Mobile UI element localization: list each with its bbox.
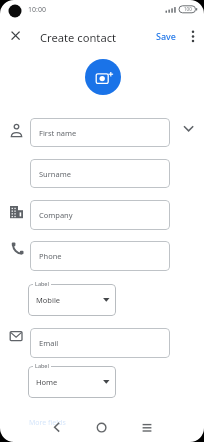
staticText: 100 <box>184 6 192 12</box>
button[interactable]: Home <box>28 366 116 398</box>
button[interactable] <box>180 121 197 138</box>
staticText: Create contact <box>40 30 117 45</box>
button[interactable]: Mobile <box>28 284 116 316</box>
button[interactable] <box>85 59 121 95</box>
button[interactable] <box>48 419 66 437</box>
button[interactable]: Company <box>30 200 170 230</box>
staticText: First name <box>39 128 77 138</box>
button[interactable]: Surname <box>30 159 170 188</box>
staticText: Company <box>39 210 73 220</box>
staticText: Phone <box>39 251 62 261</box>
button[interactable] <box>138 419 156 437</box>
button[interactable] <box>8 29 24 45</box>
staticText: Label <box>35 280 49 287</box>
button[interactable]: Email <box>30 328 170 358</box>
button[interactable]: Save <box>152 25 180 47</box>
staticText: 10:00 <box>28 5 46 15</box>
staticText: Home <box>36 377 58 387</box>
button[interactable] <box>186 29 200 45</box>
staticText: Surname <box>39 169 71 179</box>
button[interactable]: More fields <box>29 417 89 429</box>
staticText: Save <box>156 30 177 42</box>
staticText: More fields <box>29 418 66 428</box>
staticText: Email <box>39 338 59 348</box>
staticText: Label <box>35 362 49 369</box>
button[interactable] <box>93 419 111 437</box>
button[interactable]: Phone <box>30 241 170 271</box>
staticText: Mobile <box>36 295 61 305</box>
button[interactable]: First name <box>30 118 170 147</box>
